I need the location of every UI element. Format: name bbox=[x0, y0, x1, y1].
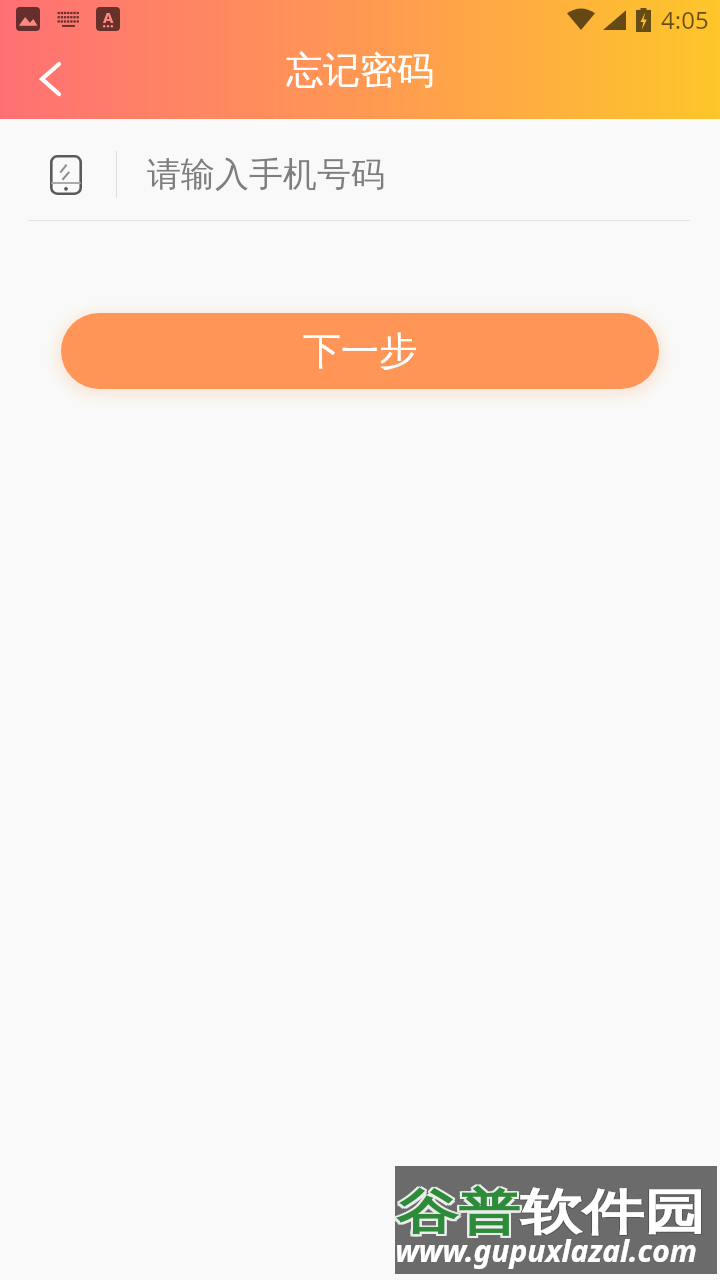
staticText: 下一步 bbox=[303, 327, 417, 375]
staticText: 软件园 bbox=[521, 1182, 707, 1243]
staticText: 忘记密码 bbox=[286, 47, 434, 94]
staticText: 软件园 bbox=[519, 1183, 705, 1243]
staticText: 软件园 bbox=[520, 1182, 706, 1243]
staticText: 请输入手机号码 bbox=[147, 153, 385, 196]
staticText: 谷普 bbox=[396, 1184, 520, 1245]
staticText: 软件园 bbox=[519, 1183, 705, 1244]
staticText: 软件园 bbox=[519, 1182, 705, 1243]
staticText: 谷普 bbox=[396, 1181, 520, 1242]
staticText: 谷普 bbox=[394, 1184, 518, 1245]
button[interactable]: Back bbox=[0, 36, 80, 116]
staticText: 软件园 bbox=[520, 1183, 706, 1244]
button[interactable]: 下一步 bbox=[61, 313, 659, 389]
button[interactable]: 请输入手机号码 bbox=[0, 119, 720, 220]
staticText: 谷普 bbox=[398, 1184, 522, 1245]
staticText: 谷普 bbox=[398, 1181, 522, 1242]
staticText: 软件园 bbox=[521, 1183, 707, 1244]
staticText: 软件园 bbox=[521, 1183, 707, 1243]
staticText: 谷普 bbox=[394, 1181, 518, 1242]
staticText: 谷普 bbox=[396, 1183, 520, 1243]
staticText: A bbox=[103, 7, 114, 27]
staticText: 4:05 bbox=[661, 3, 709, 36]
staticText: 谷普 bbox=[398, 1183, 522, 1243]
staticText: 软件园 bbox=[520, 1183, 706, 1243]
staticText: www.gupuxlazal.com bbox=[395, 1230, 697, 1271]
staticText: 谷普 bbox=[394, 1183, 518, 1243]
